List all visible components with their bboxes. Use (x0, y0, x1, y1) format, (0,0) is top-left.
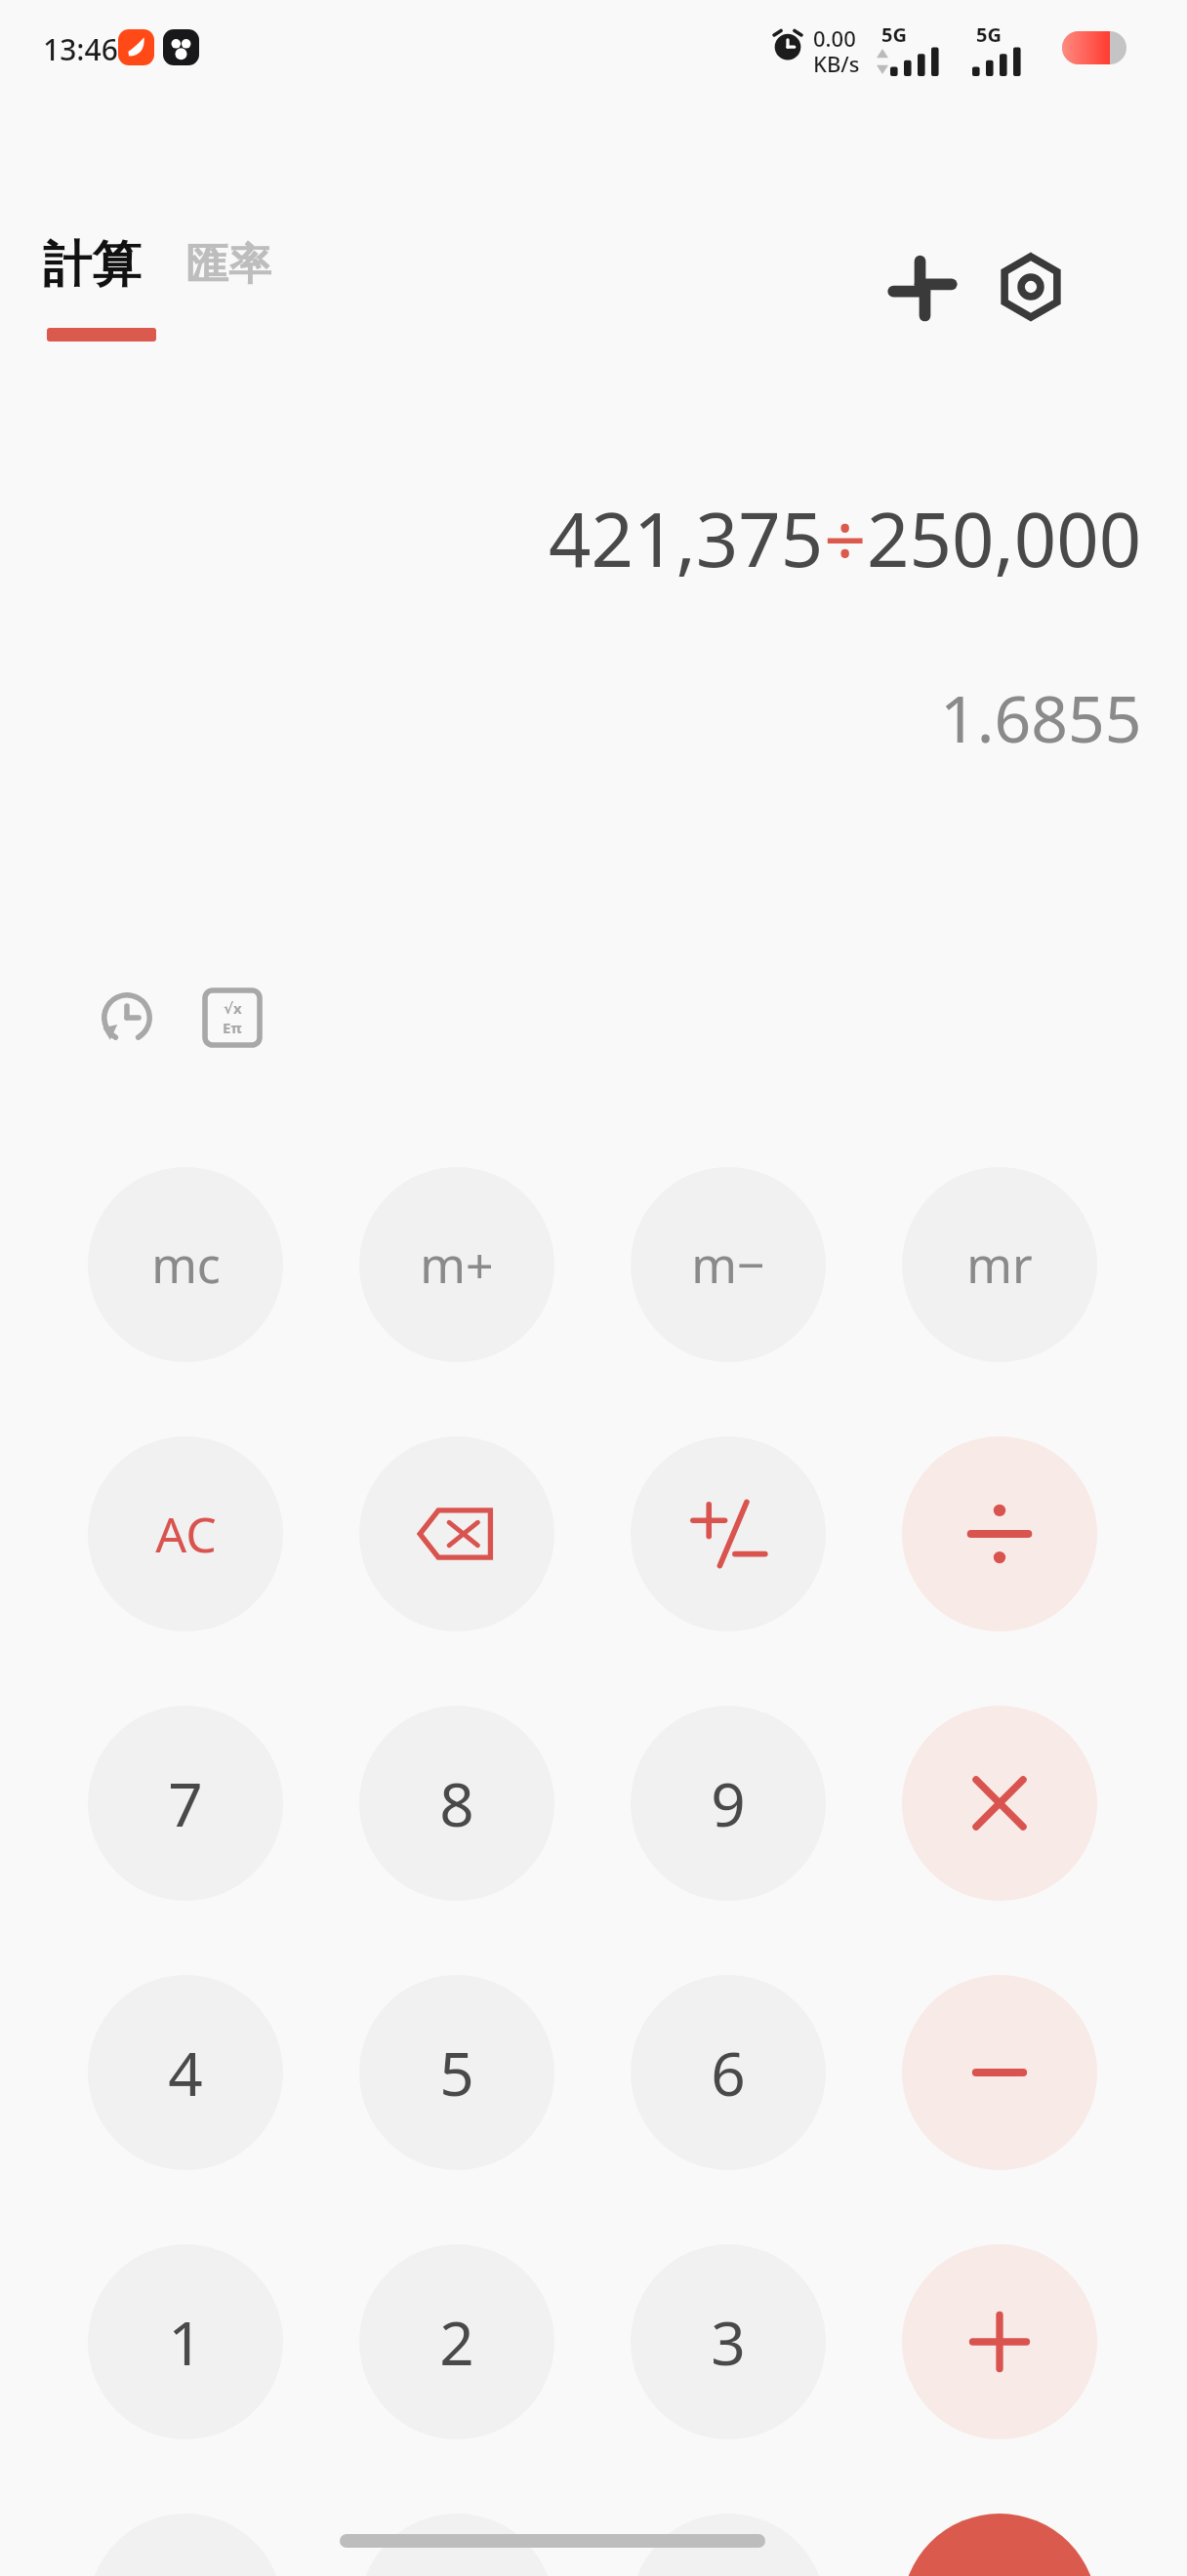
button[interactable]: 6 (631, 1975, 826, 2170)
button[interactable]: Divide (902, 1436, 1097, 1631)
button[interactable]: 7 (88, 1706, 283, 1901)
button[interactable]: Settings (976, 232, 1085, 342)
button[interactable]: Scientific (176, 961, 289, 1074)
button[interactable]: . (631, 2514, 826, 2576)
staticText: 421,375 (549, 488, 824, 589)
staticText: 5 (439, 2032, 474, 2113)
staticText: m− (691, 1231, 765, 1298)
button[interactable]: 0 (359, 2514, 554, 2576)
button[interactable]: Minus (902, 1975, 1097, 2170)
button[interactable]: Plus minus (631, 1436, 826, 1631)
staticText: 3 (711, 2301, 746, 2383)
button[interactable]: Equals (902, 2514, 1097, 2576)
button[interactable]: Collapse (869, 234, 976, 342)
button[interactable]: 8 (359, 1706, 554, 1901)
staticText: √x (224, 998, 242, 1018)
button[interactable]: % (88, 2514, 283, 2576)
staticText: 5G (976, 21, 1002, 48)
staticText: 1 (168, 2301, 203, 2383)
staticText: Eπ (223, 1018, 242, 1037)
staticText: mr (966, 1231, 1033, 1298)
button[interactable]: 2 (359, 2244, 554, 2439)
staticText: 1.6855 (940, 673, 1142, 761)
button[interactable]: History (70, 961, 184, 1074)
staticText: 5G (881, 21, 907, 48)
staticText: 7 (168, 1762, 203, 1844)
staticText: 2 (439, 2301, 474, 2383)
button[interactable]: 1 (88, 2244, 283, 2439)
button[interactable]: m+ (359, 1167, 554, 1362)
button[interactable]: 3 (631, 2244, 826, 2439)
button[interactable]: 9 (631, 1706, 826, 1901)
staticText: 9 (711, 1762, 746, 1844)
button[interactable]: m− (631, 1167, 826, 1362)
staticText: 0.00 (813, 23, 856, 53)
button[interactable]: mr (902, 1167, 1097, 1362)
staticText: 匯率 (185, 238, 271, 292)
button[interactable]: 匯率 (185, 222, 312, 320)
staticText: 計算 (43, 234, 141, 296)
staticText: KB/s (813, 49, 860, 78)
button[interactable]: Multiply (902, 1706, 1097, 1901)
staticText: AC (155, 1501, 217, 1567)
staticText: 13:46 (43, 29, 118, 69)
button[interactable]: Backspace (359, 1436, 554, 1631)
button[interactable]: mc (88, 1167, 283, 1362)
staticText: mc (151, 1231, 221, 1298)
staticText: 250,000 (867, 488, 1142, 589)
staticText: 6 (711, 2032, 746, 2113)
button[interactable]: AC (88, 1436, 283, 1631)
staticText: ÷ (824, 488, 867, 589)
button[interactable]: Plus (902, 2244, 1097, 2439)
staticText: 8 (439, 1762, 474, 1844)
staticText: 4 (168, 2032, 203, 2113)
staticText: m+ (420, 1231, 494, 1298)
button[interactable]: 4 (88, 1975, 283, 2170)
button[interactable]: 計算 (43, 222, 170, 347)
button[interactable]: 5 (359, 1975, 554, 2170)
